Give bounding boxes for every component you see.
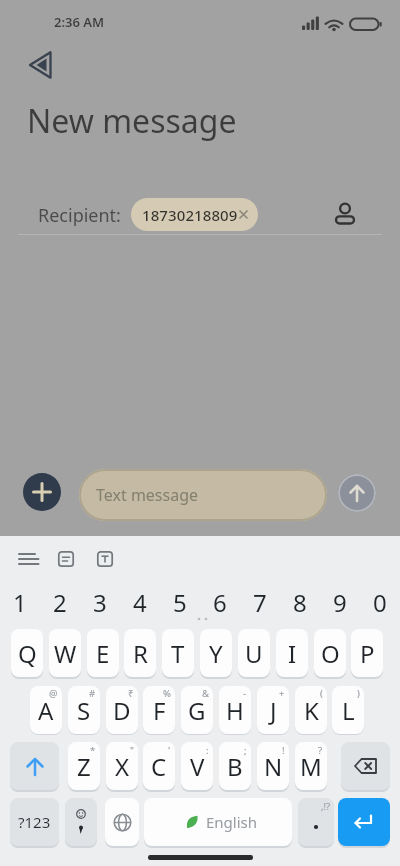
button[interactable]: V (181, 742, 213, 790)
staticText: 6 (213, 586, 227, 619)
staticText: C (151, 750, 167, 783)
staticText: E (96, 637, 110, 670)
staticText: 1 (13, 586, 27, 619)
button[interactable]: Text message (79, 469, 327, 521)
staticText: B (227, 750, 243, 783)
staticText: U (245, 637, 263, 670)
button[interactable]: C (143, 742, 175, 790)
button[interactable]: F (143, 686, 175, 734)
staticText: M (300, 750, 322, 783)
staticText: R (133, 637, 148, 670)
button[interactable] (14, 545, 44, 573)
button[interactable]: W (49, 629, 81, 677)
button[interactable] (10, 742, 59, 790)
button[interactable] (330, 198, 360, 230)
button[interactable]: S (68, 686, 100, 734)
button[interactable]: J (257, 686, 289, 734)
staticText: & (202, 687, 209, 699)
button[interactable]: N (257, 742, 289, 790)
button[interactable] (105, 798, 139, 846)
staticText: S (77, 694, 91, 727)
button[interactable]: Y (200, 629, 232, 677)
staticText: F (153, 694, 166, 727)
button[interactable]: 18730218809 (131, 198, 258, 231)
staticText: 18730218809 (142, 205, 238, 225)
button[interactable]: L (332, 686, 364, 734)
staticText: A (38, 694, 54, 727)
button[interactable] (338, 798, 390, 846)
staticText: P (360, 637, 375, 670)
staticText: J (270, 694, 277, 727)
button[interactable] (338, 474, 376, 512)
button[interactable]: X (106, 742, 138, 790)
button[interactable] (51, 545, 81, 573)
staticText: ; (244, 744, 247, 756)
staticText: T (171, 637, 185, 670)
staticText: + (279, 687, 285, 699)
button[interactable]: G (181, 686, 213, 734)
button[interactable]: E (87, 629, 119, 677)
staticText: : (206, 744, 209, 756)
staticText: Y (209, 637, 223, 670)
button[interactable]: 0 (360, 583, 400, 621)
button[interactable]: 9 (320, 583, 360, 621)
button[interactable]: 7 (240, 583, 280, 621)
staticText: W (54, 637, 77, 670)
button[interactable]: 5 (160, 583, 200, 621)
staticText: % (163, 687, 171, 699)
button[interactable]: Q (11, 629, 43, 677)
button[interactable]: O (314, 629, 346, 677)
button[interactable]: B (219, 742, 251, 790)
button[interactable]: 4 (120, 583, 160, 621)
staticText: * (90, 744, 96, 756)
staticText: - (243, 687, 247, 699)
button[interactable] (90, 545, 120, 573)
staticText: ? (318, 744, 323, 756)
button[interactable]: 1 (0, 583, 40, 621)
staticText: V (190, 750, 205, 783)
staticText: 2:36 AM (54, 13, 105, 31)
button[interactable]: A (30, 686, 62, 734)
staticText: " (130, 744, 134, 756)
staticText: I (288, 637, 297, 670)
staticText: ₹ (128, 687, 134, 699)
button[interactable]: I (276, 629, 308, 677)
button[interactable] (65, 798, 97, 846)
button[interactable]: U (238, 629, 270, 677)
button[interactable]: 3 (80, 583, 120, 621)
button[interactable] (23, 473, 61, 511)
staticText: K (304, 694, 319, 727)
button[interactable]: M (295, 742, 327, 790)
button[interactable]: R (124, 629, 156, 677)
button[interactable]: ?123 (10, 798, 59, 846)
staticText: English (206, 812, 258, 832)
staticText: G (188, 694, 206, 727)
staticText: O (321, 637, 340, 670)
button[interactable]: H (219, 686, 251, 734)
button[interactable]: 2 (40, 583, 80, 621)
staticText: 7 (253, 586, 267, 619)
button[interactable]: P (351, 629, 383, 677)
button[interactable]: English (144, 798, 292, 846)
button[interactable]: 6 (200, 583, 240, 621)
button[interactable] (298, 798, 334, 846)
staticText: # (89, 687, 96, 699)
button[interactable]: Z (68, 742, 100, 790)
button[interactable] (341, 742, 390, 790)
staticText: 4 (133, 586, 147, 619)
button[interactable]: T (162, 629, 194, 677)
staticText: H (226, 694, 244, 727)
staticText: ,!? (321, 800, 331, 812)
staticText: ' (168, 744, 171, 756)
staticText: N (264, 750, 283, 783)
button[interactable]: 8 (280, 583, 320, 621)
button[interactable]: D (106, 686, 138, 734)
button[interactable] (24, 48, 58, 82)
staticText: @ (49, 687, 58, 699)
staticText: Q (18, 637, 37, 670)
button[interactable]: K (295, 686, 327, 734)
staticText: 0 (373, 586, 387, 619)
staticText: Z (77, 750, 91, 783)
staticText: X (115, 750, 130, 783)
staticText: L (342, 694, 355, 727)
